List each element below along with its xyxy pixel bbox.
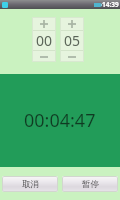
staticText: 05	[64, 31, 81, 50]
staticText: 暂停	[82, 179, 99, 190]
button[interactable]: 暂停	[62, 176, 118, 192]
button[interactable]: 取消	[2, 176, 58, 192]
button[interactable]: Decrease	[32, 51, 56, 62]
staticText: 00	[36, 31, 53, 50]
staticText: 00:04:47	[24, 108, 96, 133]
staticText: 取消	[22, 179, 39, 190]
staticText: 14:39	[102, 0, 119, 9]
button[interactable]: Increase	[60, 17, 84, 30]
button[interactable]: Decrease	[60, 51, 84, 62]
button[interactable]: Increase	[32, 17, 56, 30]
